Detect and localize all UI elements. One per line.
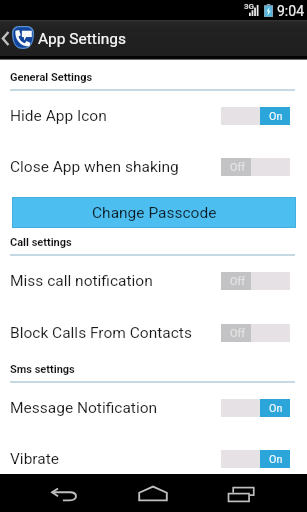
button[interactable]: Home	[113, 474, 193, 512]
staticText: 3G	[244, 2, 255, 11]
staticText: Miss call notification	[10, 272, 153, 290]
button[interactable]: Change Passcode	[12, 197, 296, 228]
staticText: On	[269, 402, 283, 415]
staticText: Off	[230, 275, 245, 288]
staticText: 9:04	[277, 3, 304, 19]
staticText: General Settings	[10, 71, 93, 84]
staticText: Hide App Icon	[10, 107, 107, 125]
button[interactable]: Close App when shaking	[0, 154, 307, 180]
button[interactable]: Vibrate	[0, 446, 307, 472]
button[interactable]: Hide App Icon	[0, 103, 307, 129]
staticText: Block Calls From Contacts	[10, 324, 192, 342]
button[interactable]: Miss call notification	[0, 268, 307, 294]
staticText: Off	[230, 327, 245, 340]
button[interactable]: Block Calls From Contacts	[0, 320, 307, 346]
staticText: Call settings	[10, 236, 72, 249]
staticText: App Settings	[38, 30, 126, 48]
staticText: Off	[230, 161, 245, 174]
staticText: On	[269, 110, 283, 123]
staticText: Change Passcode	[92, 204, 217, 222]
staticText: Sms settings	[10, 363, 75, 376]
staticText: Vibrate	[10, 450, 60, 468]
button[interactable]: Back	[17, 474, 112, 512]
staticText: Message Notification	[10, 399, 158, 417]
button[interactable]: Recent apps	[194, 474, 288, 512]
staticText: Close App when shaking	[10, 158, 179, 176]
staticText: On	[269, 453, 283, 466]
button[interactable]: Up	[0, 20, 307, 60]
button[interactable]: Message Notification	[0, 395, 307, 421]
